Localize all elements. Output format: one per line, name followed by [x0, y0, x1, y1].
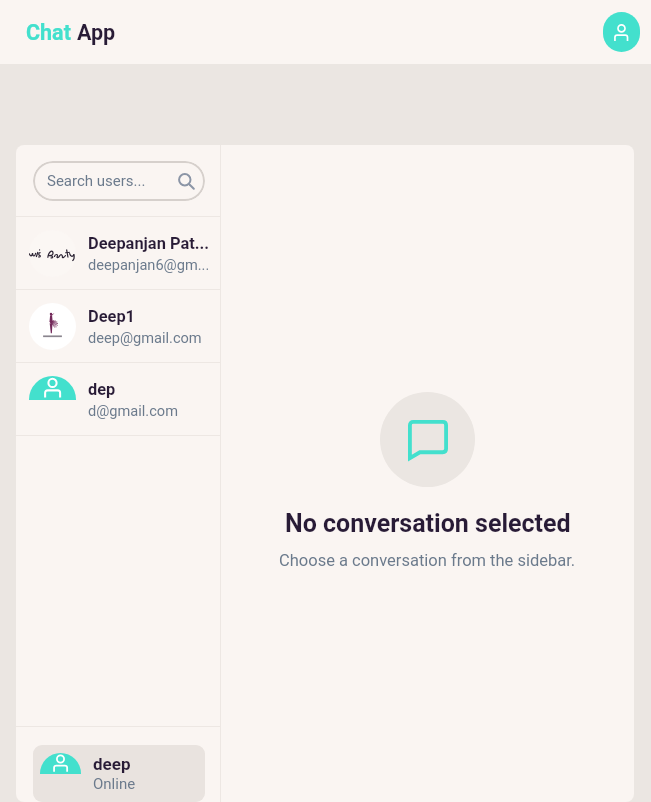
staticText: Deepanjan Pat...	[88, 234, 208, 253]
staticText: Online	[93, 775, 136, 793]
button[interactable]: deep	[33, 745, 205, 802]
staticText: deep	[93, 754, 131, 774]
staticText: No conversation selected	[285, 509, 571, 538]
button[interactable]: Chat	[26, 20, 116, 45]
staticText: Choose a conversation from the sidebar.	[279, 551, 576, 570]
button[interactable]: dep	[16, 363, 220, 435]
button[interactable]: Profile	[603, 12, 640, 52]
staticText: deep@gmail.com	[88, 329, 202, 346]
staticText: Deep1	[88, 307, 136, 326]
staticText: Search users...	[47, 172, 146, 190]
staticText: dep	[88, 380, 116, 399]
button[interactable]: Search users...	[33, 161, 205, 201]
button[interactable]: Deep1	[16, 290, 220, 362]
button[interactable]: Deepanjan Pat...	[16, 217, 220, 289]
staticText: Chat	[26, 20, 77, 45]
staticText: App	[77, 20, 116, 45]
staticText: deepanjan6@gm...	[88, 256, 208, 273]
staticText: d@gmail.com	[88, 402, 178, 419]
